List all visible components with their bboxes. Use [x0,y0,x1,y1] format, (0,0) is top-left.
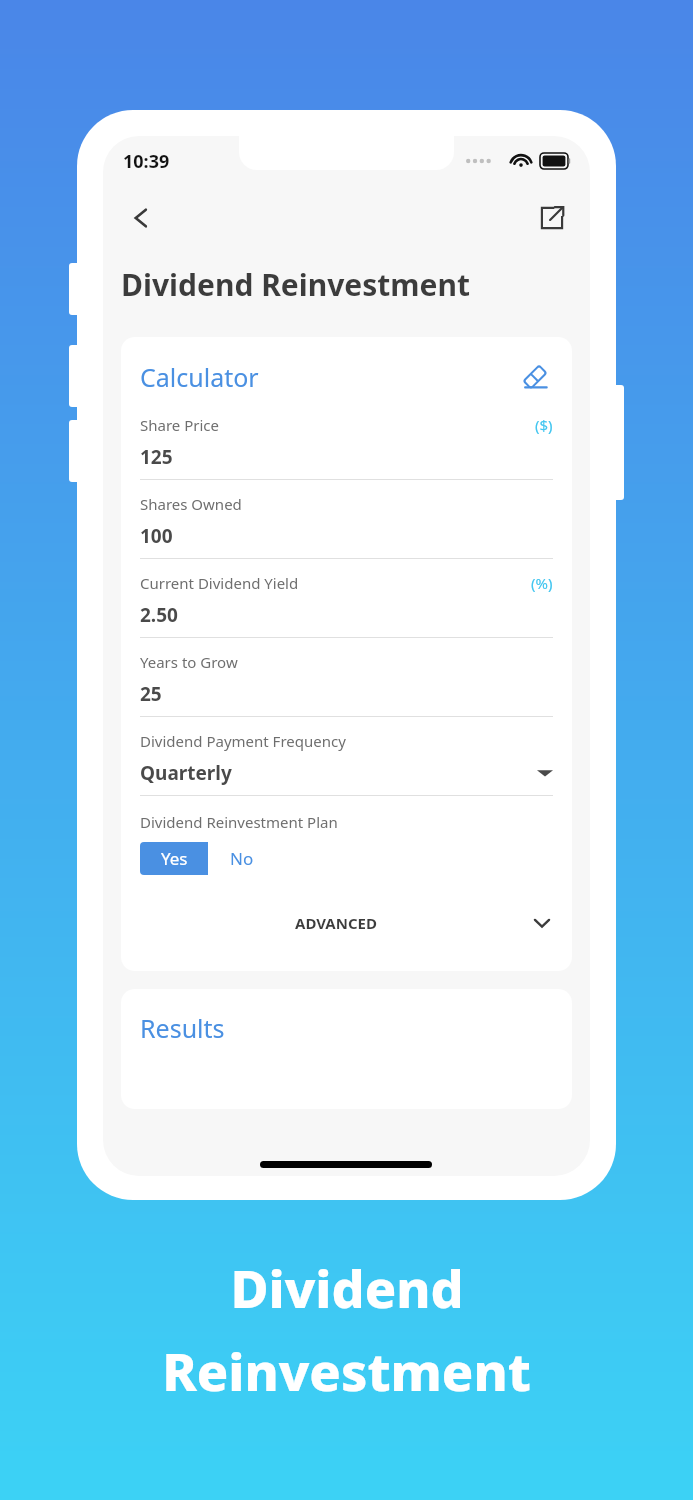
staticText: (%) [531,573,553,593]
staticText: Dividend Reinvestment [121,264,471,305]
button[interactable]: Back [121,198,161,238]
button[interactable]: ADVANCED [140,903,553,943]
staticText: Years to Grow [140,652,238,672]
staticText: Yes [161,847,188,870]
staticText: Current Dividend Yield [140,573,299,593]
button[interactable]: Current Dividend Yield [140,559,553,638]
staticText: Shares Owned [140,494,242,514]
staticText: 10:39 [123,149,170,174]
staticText: 125 [140,444,173,470]
staticText: 2.50 [140,602,178,628]
staticText: Results [140,1011,225,1045]
button[interactable]: Dividend Payment Frequency [140,717,553,796]
staticText: ADVANCED [295,913,377,933]
staticText: Dividend [230,1252,464,1323]
staticText: Dividend Reinvestment Plan [140,812,338,832]
staticText: 100 [140,523,173,549]
staticText: ($) [535,415,553,435]
staticText: No [230,847,254,870]
button[interactable]: No [208,842,276,875]
button[interactable]: Years to Grow [140,638,553,717]
button[interactable]: Share Price [140,401,553,480]
button[interactable]: Yes [140,842,208,875]
staticText: 25 [140,681,162,707]
staticText: Share Price [140,415,219,435]
button[interactable]: Share [532,198,572,238]
staticText: Quarterly [140,760,232,786]
staticText: Dividend Payment Frequency [140,731,346,751]
staticText: Reinvestment [162,1335,531,1406]
button[interactable]: Shares Owned [140,480,553,559]
staticText: Calculator [140,360,259,394]
button[interactable]: Clear [517,359,553,395]
